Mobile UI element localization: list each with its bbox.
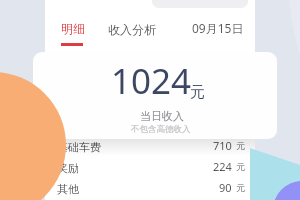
staticText: 当日收入	[140, 109, 184, 123]
staticText: 元	[236, 140, 245, 151]
staticText: 明细	[61, 21, 85, 36]
staticText: 不包含高德收入	[131, 124, 191, 135]
staticText: 元	[236, 182, 245, 193]
button[interactable]	[33, 52, 277, 139]
button[interactable]: 基础车费	[45, 136, 255, 157]
staticText: 224	[213, 159, 232, 174]
button[interactable]: 09月15日	[186, 15, 250, 41]
staticText: 基础车费	[57, 140, 101, 154]
staticText: 710	[213, 138, 232, 153]
staticText: 90	[219, 180, 232, 195]
button[interactable]: 收入分析	[102, 17, 162, 42]
staticText: 其他	[57, 182, 79, 196]
staticText: 1024	[111, 57, 192, 105]
button[interactable]: 奖励	[45, 157, 255, 178]
button[interactable]: 其他	[45, 178, 255, 199]
staticText: 09月15日	[192, 20, 244, 36]
button[interactable]: 明细	[55, 16, 91, 41]
staticText: 元	[236, 161, 245, 172]
staticText: 收入分析	[108, 22, 156, 37]
staticText: 奖励	[57, 161, 79, 175]
staticText: 元	[190, 83, 205, 102]
